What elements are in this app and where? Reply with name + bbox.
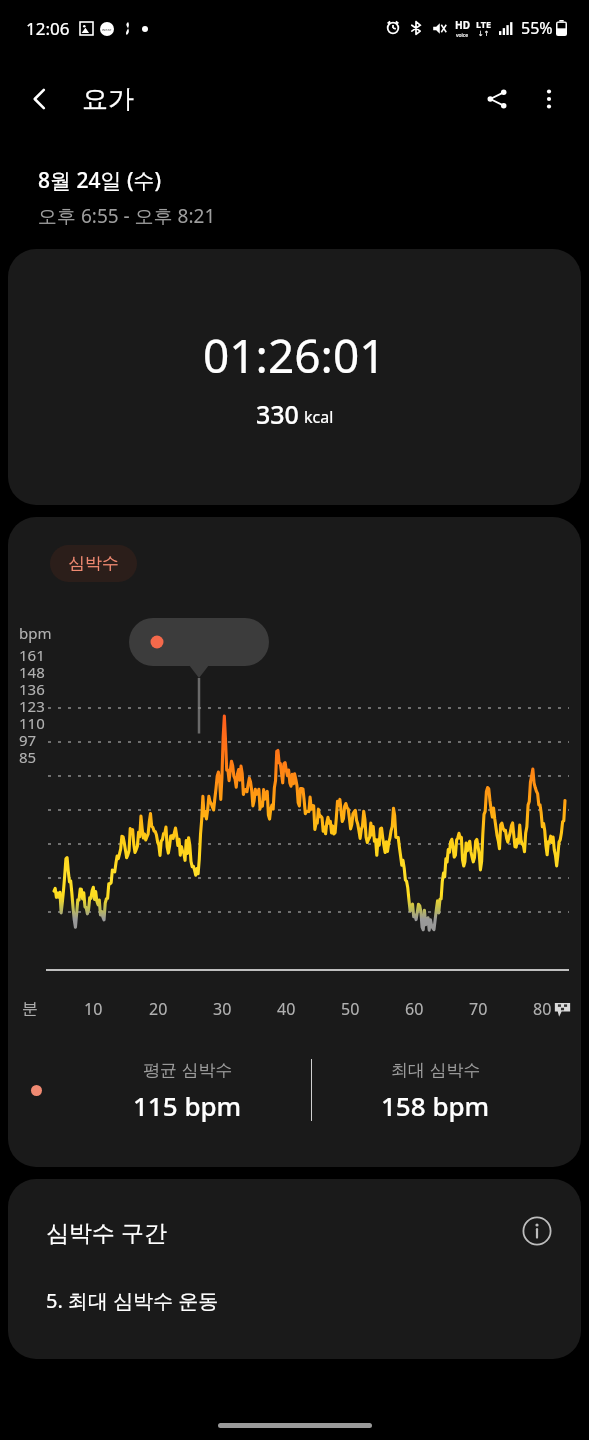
staticText: 136 xyxy=(19,679,45,699)
staticText: 161 xyxy=(19,645,45,665)
staticText: 40 xyxy=(277,998,296,1020)
staticText: 01:26:01 xyxy=(203,324,386,387)
staticText: HD xyxy=(455,18,470,32)
staticText: 최대 심박수 xyxy=(391,1058,481,1081)
button[interactable]: Information xyxy=(515,1209,559,1253)
staticText: ↓↑ xyxy=(478,30,490,38)
staticText: kcal xyxy=(304,406,334,428)
staticText: 12:06 xyxy=(26,17,70,40)
staticText: 70 xyxy=(469,998,488,1020)
staticText: 97 xyxy=(19,730,37,750)
staticText: 158 bpm xyxy=(381,1088,490,1123)
staticText: 123 xyxy=(19,696,45,716)
staticText: 5. 최대 심박수 운동 xyxy=(46,1287,219,1314)
staticText: 30 xyxy=(213,998,232,1020)
staticText: 심박수 구간 xyxy=(46,1216,167,1247)
staticText: 8월 24일 (수) xyxy=(38,166,162,195)
staticText: 50 xyxy=(341,998,360,1020)
button[interactable]: Share xyxy=(471,73,523,125)
staticText: 85 xyxy=(19,747,37,767)
staticText: 110 xyxy=(19,713,45,733)
staticText: 115 bpm xyxy=(133,1088,242,1123)
button[interactable]: 심박수 구간 xyxy=(8,1179,581,1359)
staticText: 20 xyxy=(149,998,168,1020)
staticText: 분 xyxy=(22,999,38,1019)
staticText: 10 xyxy=(84,998,103,1020)
staticText: 80 xyxy=(533,998,552,1020)
staticText: 55% xyxy=(521,17,553,39)
staticText: 330 xyxy=(256,397,299,431)
staticText: 평균 심박수 xyxy=(143,1058,233,1081)
staticText: 요가 xyxy=(82,83,134,116)
staticText: 60 xyxy=(405,998,424,1020)
staticText: 오후 6:55 - 오후 8:21 xyxy=(38,203,216,229)
staticText: voice xyxy=(456,32,469,39)
staticText: LTE xyxy=(476,18,492,30)
button[interactable]: More options xyxy=(523,73,575,125)
staticText: wear xyxy=(102,27,112,32)
button[interactable]: 01:26:01 xyxy=(8,249,581,505)
button[interactable]: Back xyxy=(14,73,66,125)
staticText: bpm xyxy=(19,623,52,643)
button[interactable]: 심박수 xyxy=(50,545,137,582)
staticText: 심박수 xyxy=(68,553,119,574)
staticText: 148 xyxy=(19,662,45,682)
button[interactable]: 심박수 xyxy=(8,517,581,1167)
